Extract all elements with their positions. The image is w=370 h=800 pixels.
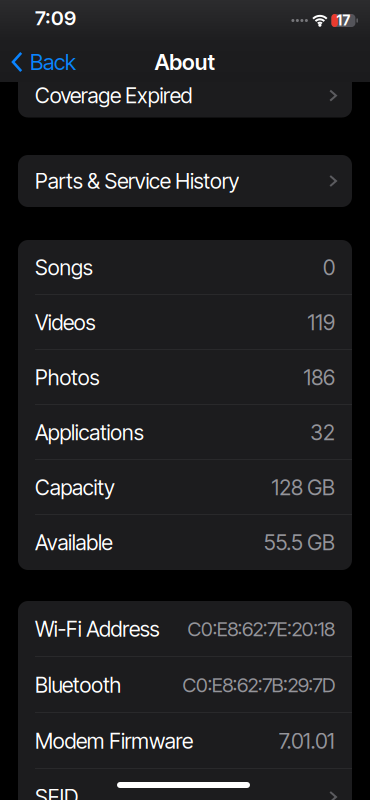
staticText: Bluetooth (35, 672, 122, 698)
button[interactable]: Wi-Fi Address (18, 601, 352, 657)
button[interactable]: Videos (18, 295, 352, 350)
staticText: 7.01.01 (279, 728, 335, 754)
button[interactable]: Songs (18, 240, 352, 295)
staticText: 186 (304, 365, 335, 390)
button[interactable]: Coverage Expired (18, 82, 352, 117)
button[interactable]: Photos (18, 350, 352, 405)
staticText: Photos (35, 365, 99, 390)
staticText: C0:E8:62:7B:29:7D (183, 673, 335, 697)
staticText: Modem Firmware (35, 728, 193, 754)
staticText: Wi-Fi Address (35, 616, 159, 642)
staticText: SEID (35, 784, 78, 800)
button[interactable]: Available (18, 515, 352, 570)
staticText: C0:E8:62:7E:20:18 (188, 617, 335, 641)
staticText: 0 (323, 255, 335, 280)
button[interactable]: Applications (18, 405, 352, 460)
button[interactable]: SEID (18, 769, 352, 800)
button[interactable]: Back (0, 49, 76, 75)
staticText: 32 (310, 420, 335, 445)
staticText: Videos (35, 310, 95, 335)
staticText: Songs (35, 255, 93, 280)
button[interactable]: Modem Firmware (18, 713, 352, 769)
staticText: 7:09 (35, 6, 76, 30)
staticText: Back (30, 49, 76, 75)
staticText: 55.5 GB (264, 530, 335, 555)
staticText: Applications (35, 420, 144, 445)
button[interactable]: Bluetooth (18, 657, 352, 713)
staticText: Available (35, 530, 113, 555)
staticText: About (154, 49, 216, 75)
staticText: 128 GB (271, 475, 335, 500)
staticText: Coverage Expired (35, 83, 192, 108)
staticText: Capacity (35, 475, 115, 500)
button[interactable]: Capacity (18, 460, 352, 515)
button[interactable]: Parts & Service History (18, 155, 352, 207)
staticText: 119 (308, 310, 335, 335)
staticText: 17 (336, 12, 350, 29)
staticText: Parts & Service History (35, 168, 239, 194)
